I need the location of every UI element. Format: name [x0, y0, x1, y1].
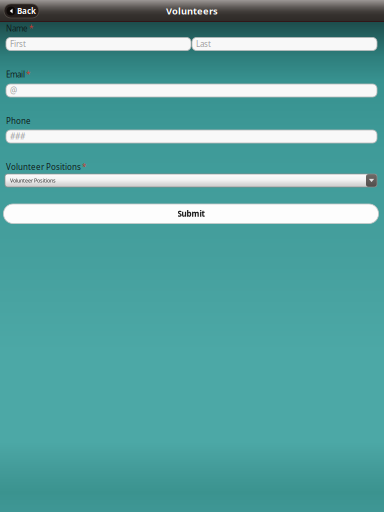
button[interactable]: Back — [4, 4, 39, 18]
staticText: * — [82, 162, 86, 172]
staticText: Submit — [177, 208, 204, 219]
staticText: Volunteer Positions — [6, 162, 81, 172]
staticText: Volunteer Positions — [10, 177, 56, 184]
staticText: * — [29, 23, 33, 34]
staticText: Email — [6, 69, 25, 80]
staticText: First — [10, 39, 26, 49]
staticText: ### — [10, 131, 25, 142]
staticText: Last — [196, 39, 211, 49]
staticText: * — [26, 69, 30, 80]
staticText: @ — [10, 85, 17, 96]
staticText: Phone — [6, 116, 31, 126]
staticText: Back — [17, 6, 36, 16]
staticText: Name — [6, 23, 28, 34]
button[interactable]: Submit — [3, 204, 378, 223]
staticText: Volunteers — [166, 5, 218, 17]
button[interactable]: Volunteer Positions — [5, 174, 377, 187]
